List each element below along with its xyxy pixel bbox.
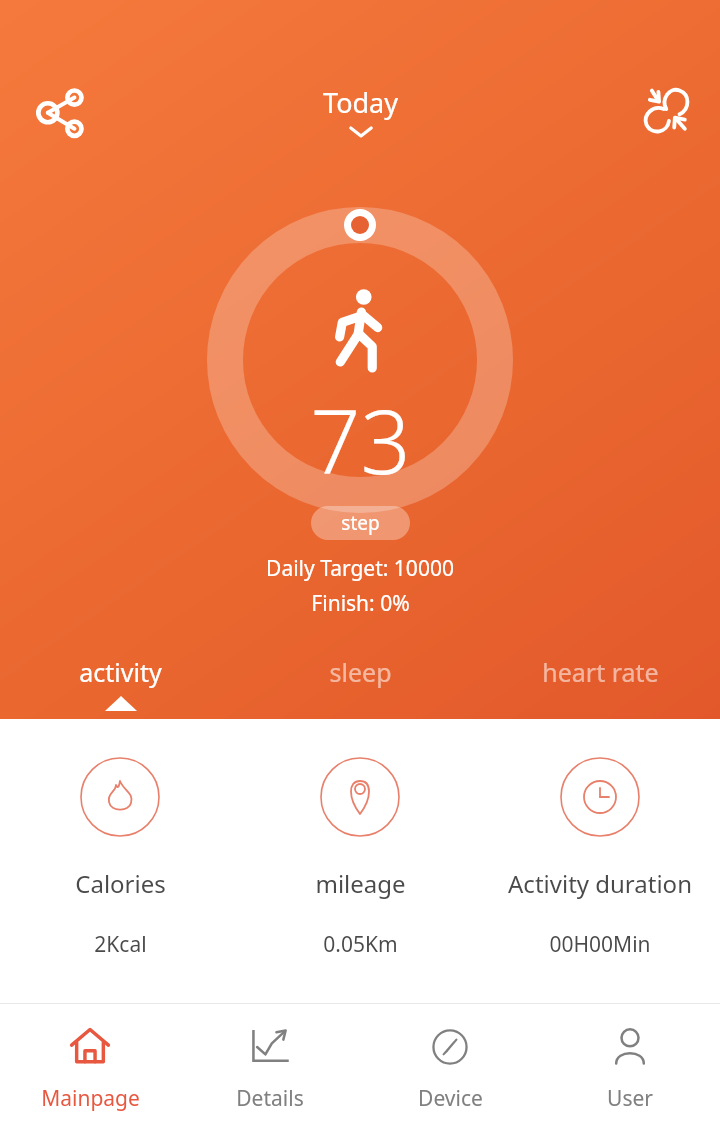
button[interactable]: step [311,506,410,540]
button[interactable]: sleep [240,647,480,719]
staticText: Today [323,84,398,121]
staticText: Details [236,1084,304,1113]
staticText: 73 [310,380,411,500]
staticText: step [341,510,380,536]
button[interactable]: Disconnect device [632,76,698,142]
button[interactable]: Mainpage [0,1004,180,1134]
button[interactable]: Today [323,84,398,141]
staticText: Finish: 0% [311,589,410,618]
staticText: 00H00Min [549,930,651,959]
button[interactable]: Share [22,74,98,150]
staticText: mileage [315,867,406,900]
staticText: Activity duration [508,867,692,900]
button[interactable]: activity [0,647,240,719]
staticText: 2Kcal [94,930,147,959]
button[interactable]: Activity duration [480,757,720,959]
staticText: 0.05Km [323,930,398,959]
staticText: User [607,1084,653,1113]
staticText: Daily Target: 10000 [266,554,454,583]
button[interactable]: mileage [240,757,480,959]
staticText: sleep [329,655,392,689]
staticText: heart rate [542,655,659,689]
button[interactable]: Details [180,1004,360,1134]
staticText: activity [79,655,162,689]
button[interactable]: heart rate [480,647,720,719]
button[interactable]: Calories [0,757,240,959]
staticText: Device [418,1084,483,1113]
staticText: Calories [75,867,166,900]
button[interactable]: Device [360,1004,540,1134]
button[interactable]: User [540,1004,720,1134]
staticText: Mainpage [41,1084,140,1113]
